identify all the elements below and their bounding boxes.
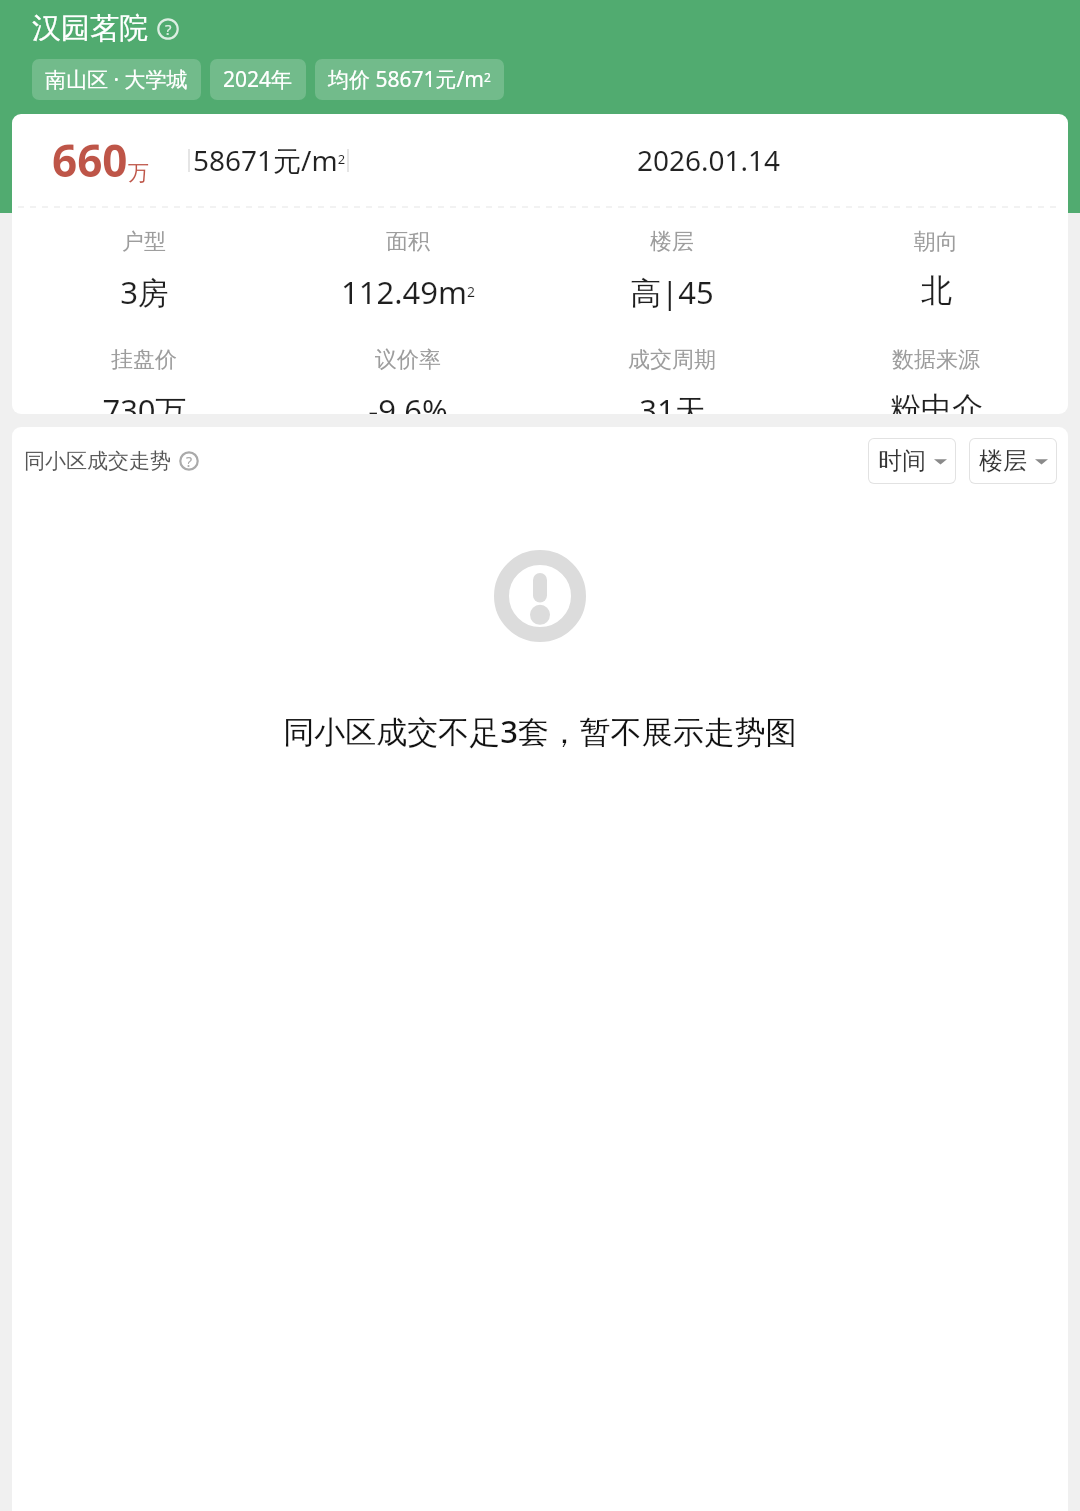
staticText: 南山区 · 大学城 xyxy=(45,65,188,94)
staticText: 挂盘价 xyxy=(111,346,177,374)
staticText: 议价率 xyxy=(375,346,441,374)
staticText: 北 xyxy=(921,271,952,310)
staticText: 万 xyxy=(128,160,149,186)
staticText: 2026.01.14 xyxy=(637,141,781,179)
staticText: 均价 58671元/m2 xyxy=(328,65,491,94)
staticText: 时间 xyxy=(878,446,926,476)
staticText: 3房 xyxy=(120,271,169,313)
staticText: 朝向 xyxy=(914,228,958,256)
button[interactable]: Help xyxy=(157,18,179,40)
staticText: 58671元/m2 xyxy=(193,141,346,179)
staticText: 楼层 xyxy=(650,228,694,256)
button[interactable]: 南山区 · 大学城 xyxy=(32,59,201,100)
staticText: 成交周期 xyxy=(628,346,716,374)
staticText: 楼层 xyxy=(979,446,1027,476)
staticText: 660 xyxy=(52,130,128,190)
staticText: 同小区成交不足3套，暂不展示走势图 xyxy=(12,710,1068,752)
button[interactable]: 时间 xyxy=(868,438,956,484)
staticText: 汉园茗院 xyxy=(32,10,148,47)
staticText: 730万 xyxy=(102,389,187,414)
staticText: -9.6% xyxy=(368,389,448,414)
staticText: 112.49m2 xyxy=(341,271,475,313)
button[interactable]: Help xyxy=(179,451,199,471)
staticText: 同小区成交走势 xyxy=(24,448,171,474)
button[interactable]: 楼层 xyxy=(969,438,1057,484)
staticText: 高|45 xyxy=(630,271,714,313)
staticText: 数据来源 xyxy=(892,346,980,374)
staticText: ? xyxy=(186,452,193,471)
staticText: 粉中介 xyxy=(890,389,983,414)
staticText: 31天 xyxy=(639,389,706,414)
staticText: ? xyxy=(165,19,172,39)
button[interactable]: 均价 58671元/m2 xyxy=(315,59,504,100)
button[interactable]: 660 xyxy=(12,114,1068,414)
staticText: 面积 xyxy=(386,228,430,256)
staticText: 户型 xyxy=(122,228,166,256)
button[interactable]: 2024年 xyxy=(210,59,306,100)
staticText: 2024年 xyxy=(223,65,293,94)
